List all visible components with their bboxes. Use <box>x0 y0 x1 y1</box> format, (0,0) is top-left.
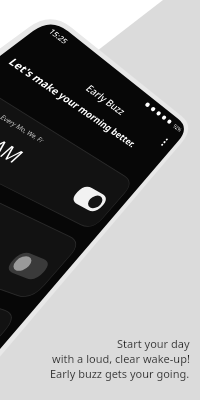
staticText: Early buzz gets your going. <box>50 366 190 381</box>
button[interactable] <box>0 0 200 400</box>
staticText: with a loud, clear wake-up! <box>52 351 190 366</box>
staticText: Start your day <box>117 336 190 351</box>
